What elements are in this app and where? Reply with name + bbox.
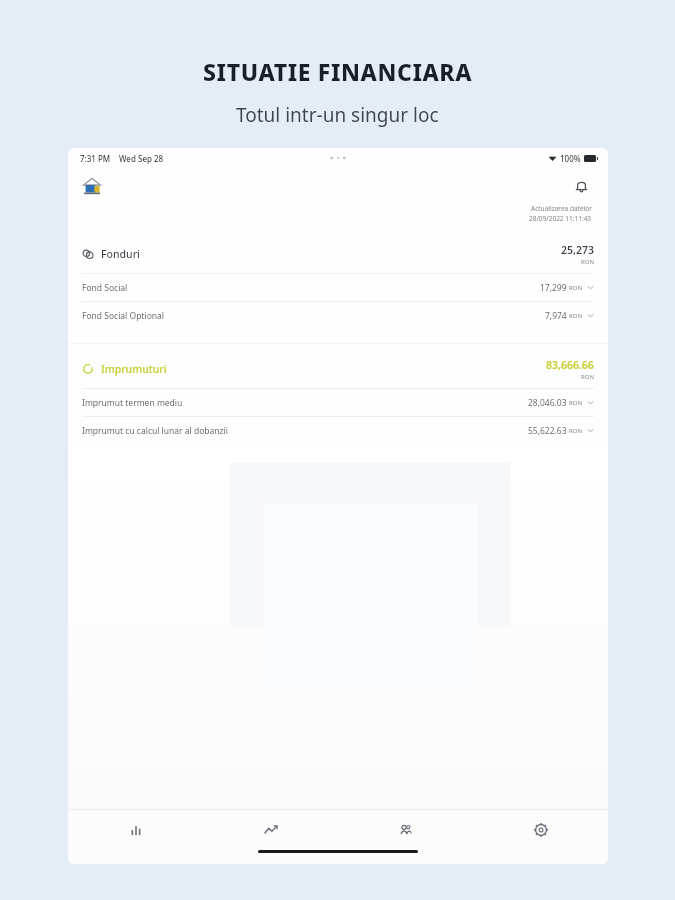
staticText: RON [581, 373, 594, 381]
staticText: 100% [560, 153, 581, 164]
staticText: Fond Social [82, 282, 128, 294]
button[interactable]: Statistics [68, 810, 203, 850]
button[interactable]: Settings [473, 810, 608, 850]
button[interactable]: People [338, 810, 473, 850]
staticText: RON [569, 399, 582, 407]
staticText: 7,974 [545, 310, 567, 322]
staticText: 28/09/2022 11:11:43 [529, 214, 592, 223]
button[interactable]: Fond Social Optional [68, 302, 608, 329]
button[interactable]: Fonduri [68, 235, 608, 273]
staticText: Actualizarea datelor [531, 204, 592, 213]
staticText: RON [569, 312, 582, 320]
staticText: Imprumut cu calcul lunar al dobanzii [82, 425, 228, 437]
button[interactable]: Imprumuturi [68, 350, 608, 388]
staticText: Fond Social Optional [82, 310, 164, 322]
staticText: RON [581, 258, 594, 266]
button[interactable]: Fond Social [68, 274, 608, 301]
staticText: 28,046.03 [528, 397, 567, 409]
button[interactable]: Trends [203, 810, 338, 850]
staticText: SITUATIE FINANCIARA [203, 56, 473, 87]
staticText: 55,622.63 [528, 425, 567, 437]
staticText: Totul intr-un singur loc [236, 102, 439, 128]
staticText: 17,299 [540, 282, 567, 294]
staticText: Imprumut termen mediu [82, 397, 183, 409]
staticText: Fonduri [101, 247, 140, 261]
button[interactable]: App logo [82, 176, 102, 196]
button[interactable]: Imprumut cu calcul lunar al dobanzii [68, 417, 608, 444]
staticText: RON [569, 427, 582, 435]
staticText: 25,273 [561, 243, 594, 257]
button[interactable]: Imprumut termen mediu [68, 389, 608, 416]
staticText: Imprumuturi [101, 362, 167, 376]
button[interactable]: Notifications [568, 173, 594, 199]
staticText: Wed Sep 28 [119, 153, 164, 164]
staticText: 83,666.66 [546, 358, 594, 372]
staticText: 7:31 PM [80, 153, 111, 164]
staticText: RON [569, 284, 582, 292]
